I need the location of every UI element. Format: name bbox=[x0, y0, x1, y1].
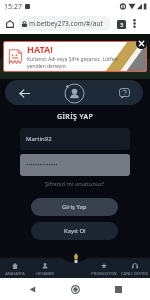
button[interactable]: Martin92 bbox=[20, 128, 130, 150]
button[interactable]: Giriş Yap bbox=[31, 198, 118, 216]
staticText: GİRİŞ YAP bbox=[57, 112, 94, 122]
button[interactable]: Kayıt Ol bbox=[31, 222, 118, 240]
button[interactable]: ANASAYFA bbox=[0, 258, 30, 278]
button[interactable]: Recent apps bbox=[107, 278, 129, 300]
staticText: HESABIM bbox=[36, 271, 54, 276]
button[interactable]: Şifrenizi mi unuttunuz? bbox=[41, 179, 109, 188]
button[interactable]: Close bbox=[136, 38, 147, 49]
staticText: 3 bbox=[120, 21, 124, 29]
button[interactable]: Tabs bbox=[114, 17, 128, 31]
button[interactable]: CANLI DESTEK bbox=[119, 258, 150, 278]
button[interactable]: Profile bbox=[62, 81, 86, 105]
staticText: CANLI DESTEK bbox=[121, 271, 148, 276]
button[interactable]: Help bbox=[116, 85, 132, 101]
staticText: m.betbey273.com/#/aut bbox=[29, 19, 103, 28]
staticText: Martin92 bbox=[26, 135, 52, 143]
staticText: Kullanıcı Adı veya Şifre geçersiz. Lütfe… bbox=[27, 56, 118, 70]
staticText: Giriş Yap bbox=[62, 203, 87, 211]
button[interactable]: Back bbox=[16, 85, 32, 101]
button[interactable]: •••••••••••••• bbox=[20, 154, 130, 176]
staticText: •••••••••••••• bbox=[26, 161, 58, 169]
button[interactable]: m.betbey273.com/#/aut bbox=[18, 16, 111, 31]
staticText: Şifrenizi mi unuttunuz? bbox=[45, 180, 105, 187]
button[interactable]: Home bbox=[64, 278, 86, 300]
button[interactable]: Home bbox=[2, 16, 18, 32]
button[interactable]: Back bbox=[21, 278, 43, 300]
button[interactable]: More options bbox=[128, 17, 141, 30]
button[interactable]: PROMOSYON bbox=[88, 258, 119, 278]
button[interactable]: Casino bbox=[69, 251, 82, 264]
staticText: Kayıt Ol bbox=[64, 227, 86, 235]
button[interactable]: HESABIM bbox=[30, 258, 60, 278]
staticText: ANASAYFA bbox=[5, 271, 25, 276]
staticText: HATA! bbox=[27, 43, 53, 55]
staticText: PROMOSYON bbox=[91, 271, 117, 276]
staticText: 15:27 bbox=[4, 2, 22, 12]
